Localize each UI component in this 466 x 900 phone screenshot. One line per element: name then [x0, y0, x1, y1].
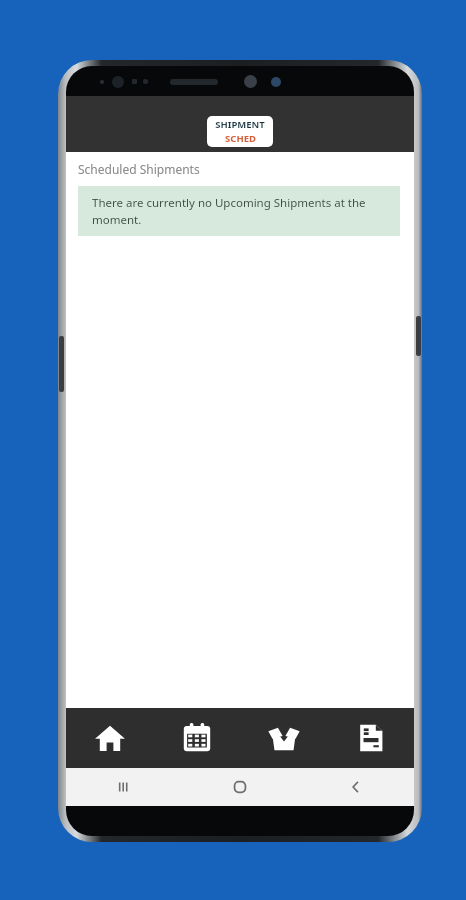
button[interactable]: Schedule	[153, 708, 240, 768]
button[interactable]: Home	[182, 768, 298, 806]
button[interactable]: Recents	[66, 768, 182, 806]
staticText: SHIPMENT	[215, 118, 265, 131]
button[interactable]: Home	[66, 708, 153, 768]
staticText: Scheduled Shipments	[78, 161, 200, 177]
button[interactable]: Shipments	[240, 708, 327, 768]
staticText: SCHED	[225, 132, 256, 145]
button[interactable]: Back	[298, 768, 414, 806]
button[interactable]: SHIPMENT	[207, 116, 273, 147]
staticText: There are currently no Upcoming Shipment…	[92, 195, 386, 227]
button[interactable]: Invoices	[327, 708, 414, 768]
